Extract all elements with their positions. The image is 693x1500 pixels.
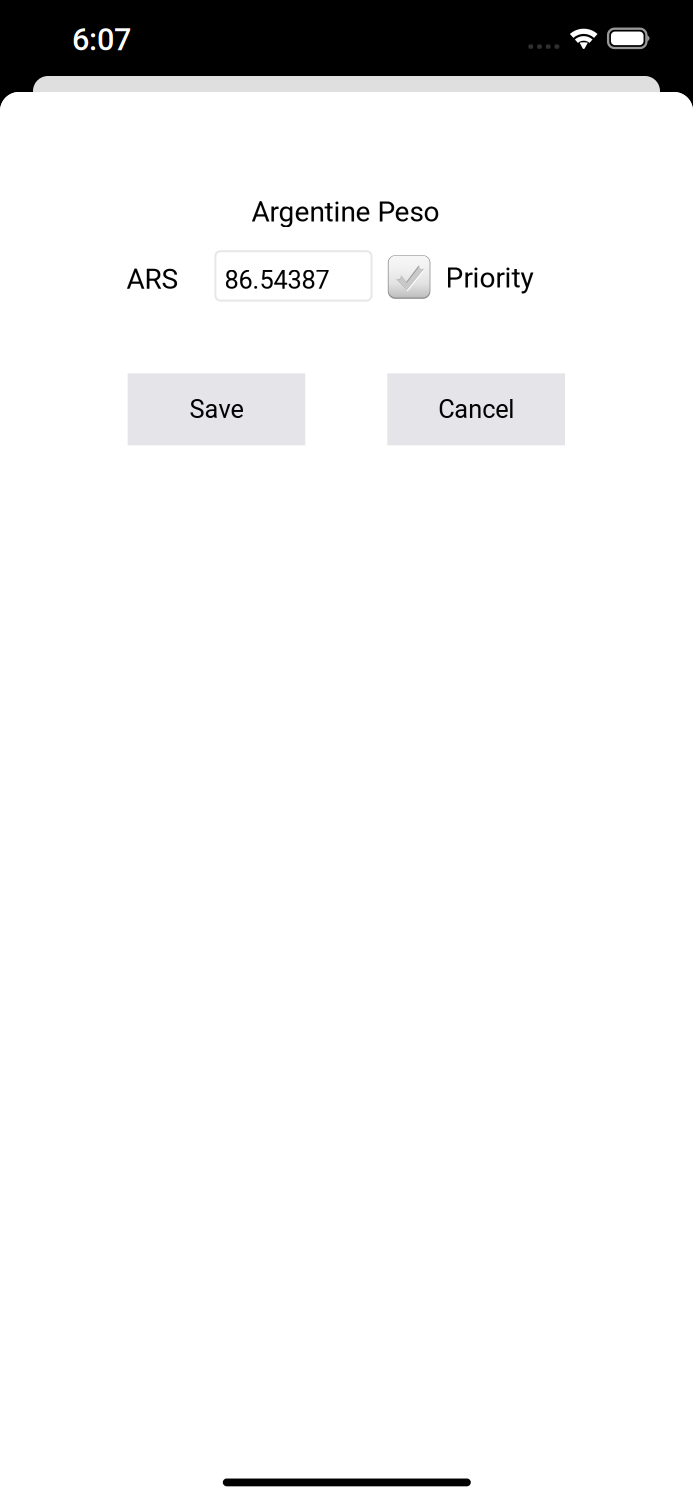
staticText: Argentine Peso (251, 195, 439, 228)
button[interactable]: Priority (388, 255, 430, 299)
staticText: Cancel (438, 394, 514, 424)
staticText: Save (189, 394, 243, 424)
staticText: 6:07 (72, 22, 131, 58)
staticText: Priority (445, 262, 533, 294)
staticText: 86.54387 (224, 265, 329, 295)
staticText: ARS (126, 263, 178, 296)
button[interactable]: Cancel (387, 373, 565, 445)
button[interactable]: Save (128, 373, 305, 445)
